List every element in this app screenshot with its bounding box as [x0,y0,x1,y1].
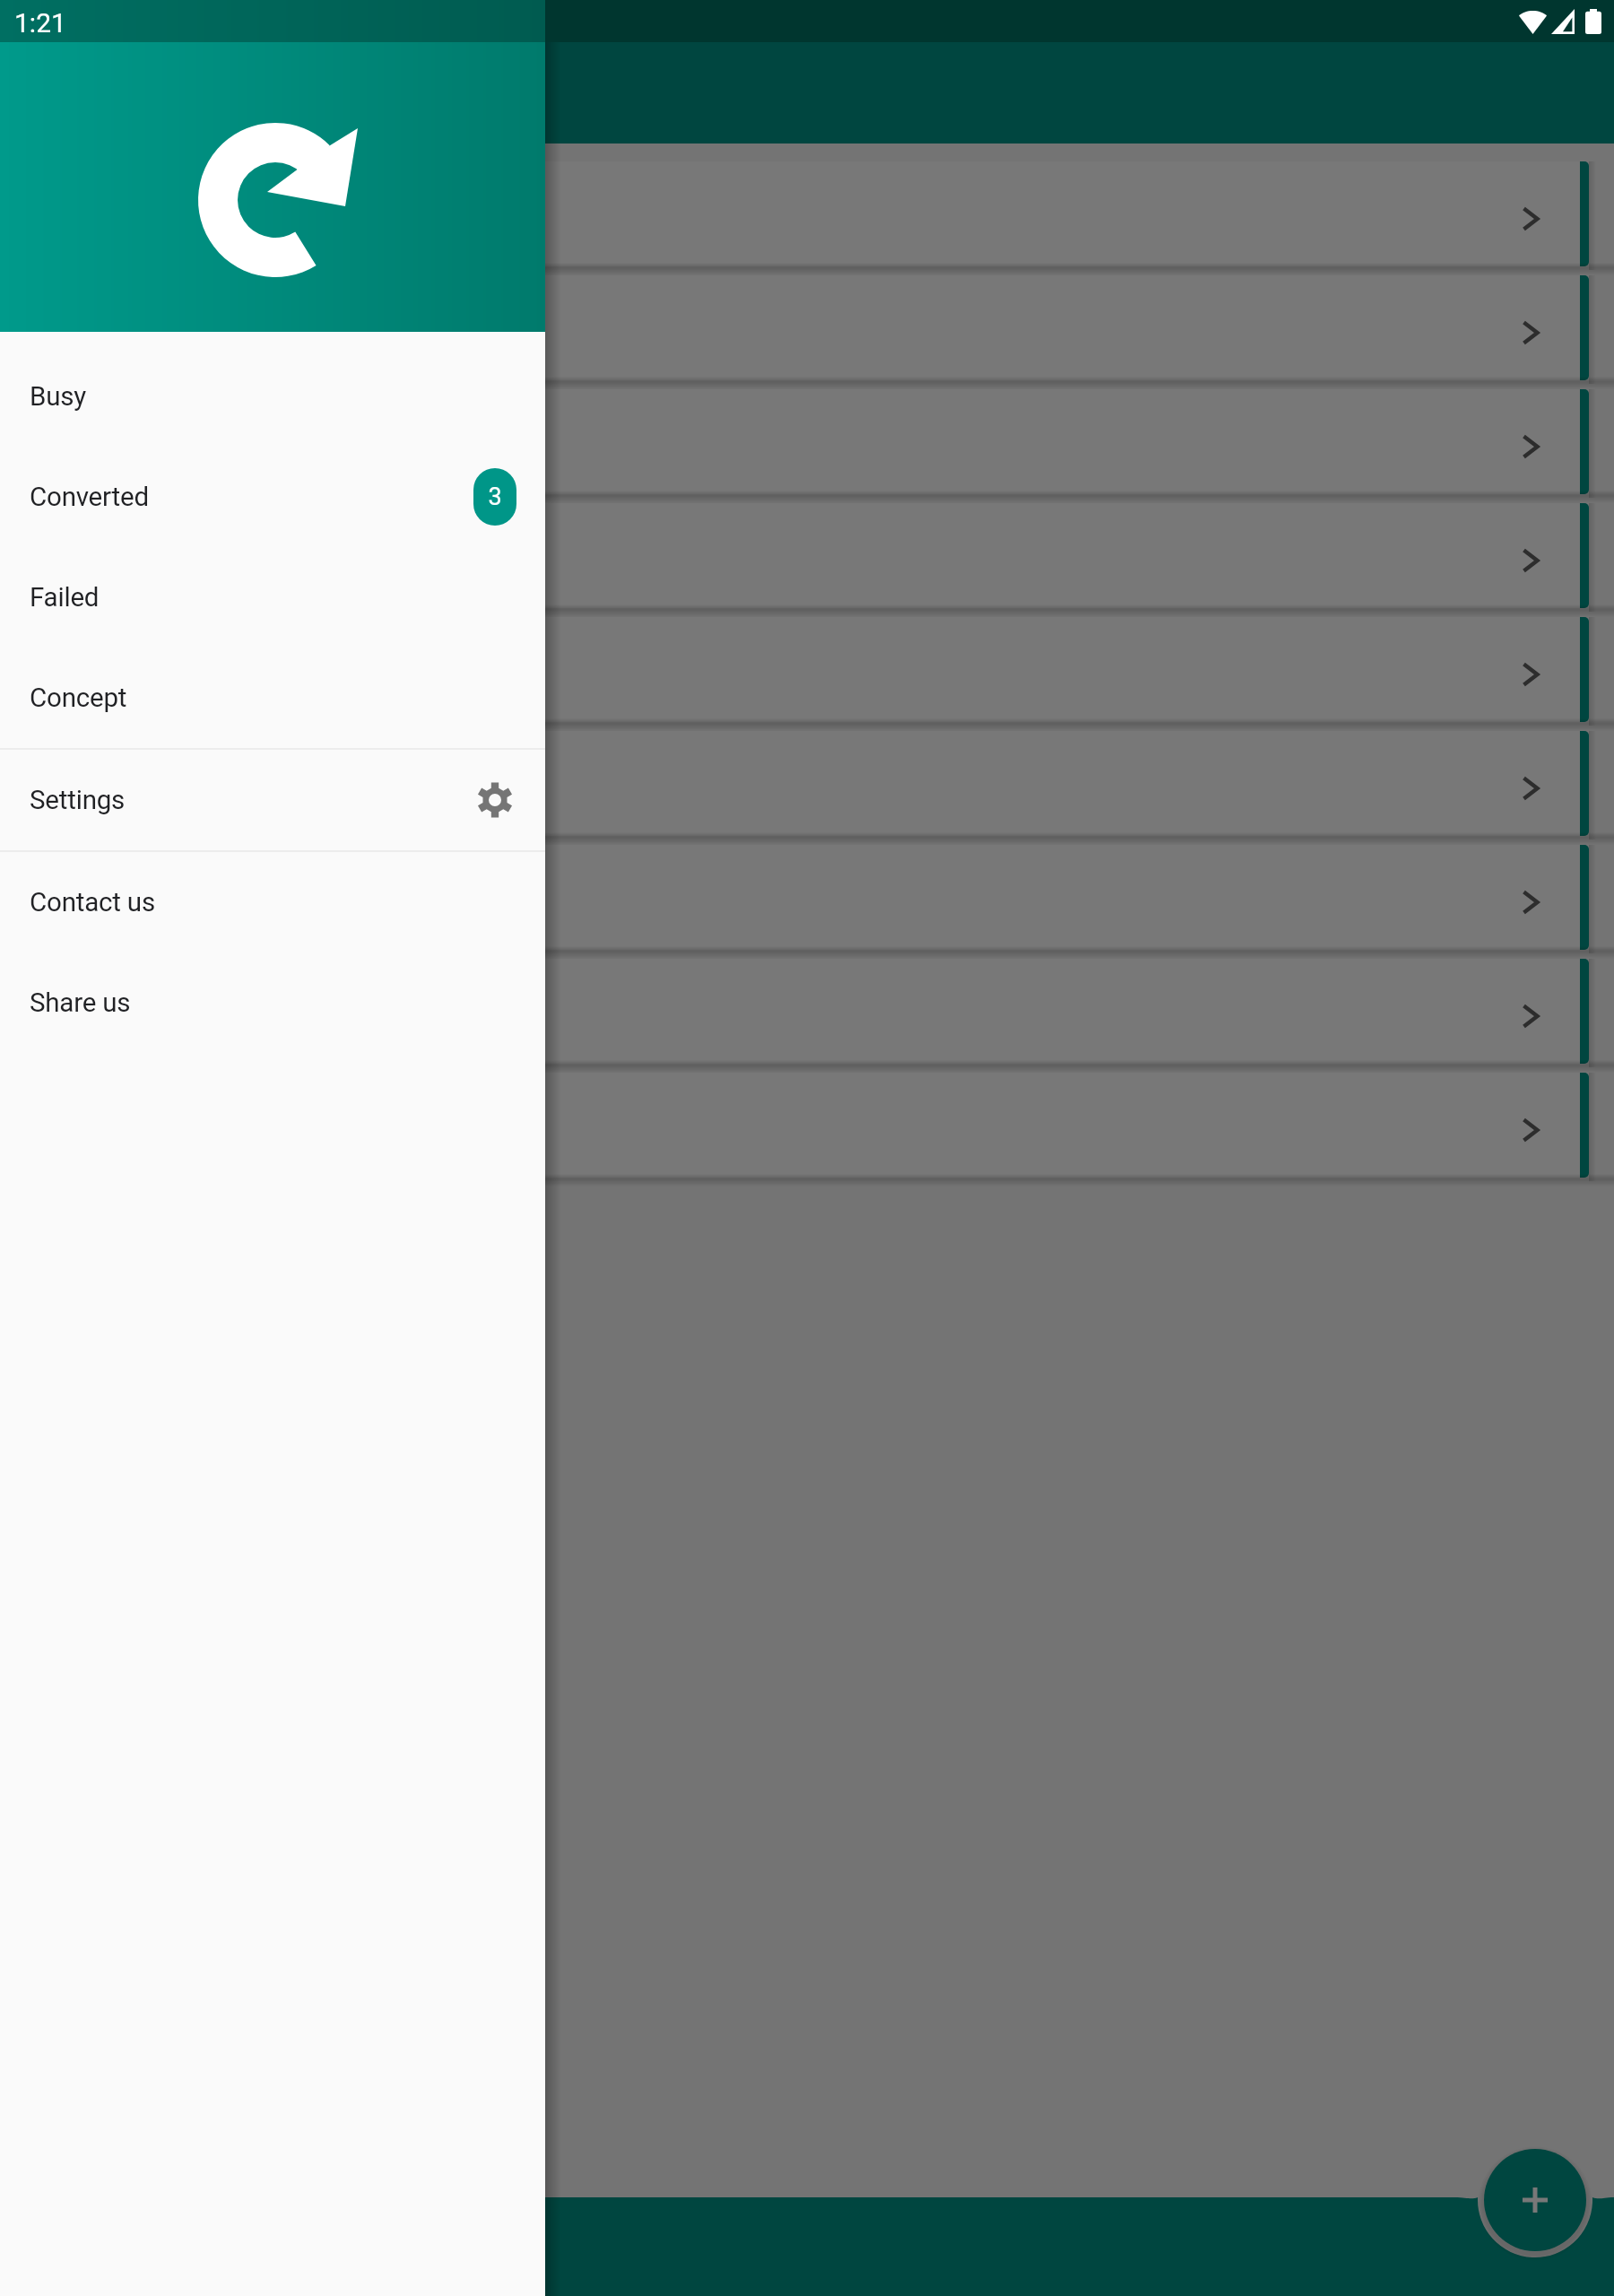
button[interactable] [0,389,1614,503]
staticText: Converted [30,482,149,513]
button[interactable]: Share us [0,952,545,1053]
button[interactable] [0,503,1614,617]
button[interactable]: Busy [0,346,545,447]
button[interactable]: Failed [0,547,545,648]
button[interactable] [0,275,1614,389]
staticText: Share us [30,987,131,1019]
staticText: 1:21 [14,7,66,39]
staticText: Concept [30,683,127,714]
staticText: Busy [30,381,87,413]
button[interactable] [0,617,1614,731]
button[interactable]: Settings [0,750,545,850]
button[interactable] [0,959,1614,1073]
button[interactable] [0,731,1614,845]
button[interactable]: Contact us [0,852,545,952]
button[interactable]: Concept [0,648,545,748]
button[interactable]: Converted [0,447,545,547]
button[interactable] [0,845,1614,959]
button[interactable]: Add conversion [1484,2149,1586,2251]
staticText: Failed [30,582,100,613]
staticText: Settings [30,785,126,816]
staticText: 3 [488,483,502,511]
staticText: Contact us [30,887,155,918]
button[interactable] [0,161,1614,275]
button[interactable] [0,1073,1614,1187]
button[interactable]: App logo [0,0,545,332]
